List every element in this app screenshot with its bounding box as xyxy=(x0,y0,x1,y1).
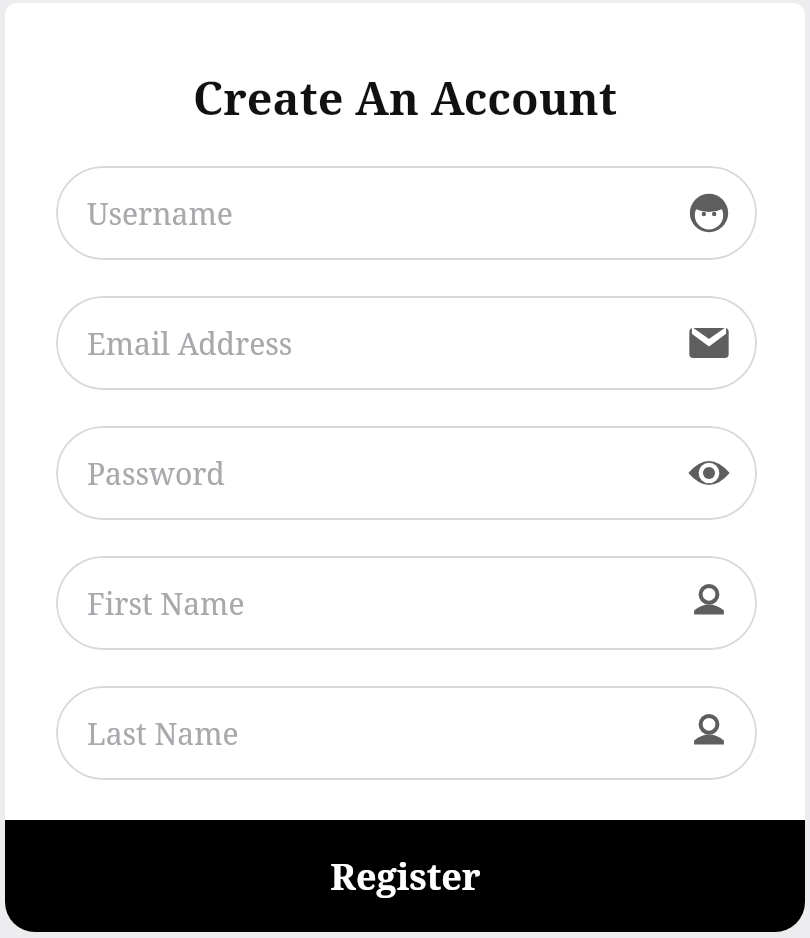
staticText: Last Name xyxy=(87,713,239,754)
other: Username xyxy=(681,185,737,241)
button[interactable]: Register xyxy=(5,820,805,932)
staticText: First Name xyxy=(87,583,245,624)
staticText: Username xyxy=(87,193,233,234)
other: Name xyxy=(681,575,737,631)
staticText: Register xyxy=(330,852,481,901)
button[interactable]: First Name xyxy=(56,556,757,650)
other: Name xyxy=(681,705,737,761)
button[interactable]: Email Address xyxy=(56,296,757,390)
staticText: Create An Account xyxy=(5,67,805,128)
button[interactable]: Last Name xyxy=(56,686,757,780)
button[interactable]: Password xyxy=(56,426,757,520)
other: Show password xyxy=(681,445,737,501)
staticText: Email Address xyxy=(87,323,293,364)
other: Email xyxy=(681,315,737,371)
staticText: Password xyxy=(87,453,225,494)
button[interactable]: Username xyxy=(56,166,757,260)
